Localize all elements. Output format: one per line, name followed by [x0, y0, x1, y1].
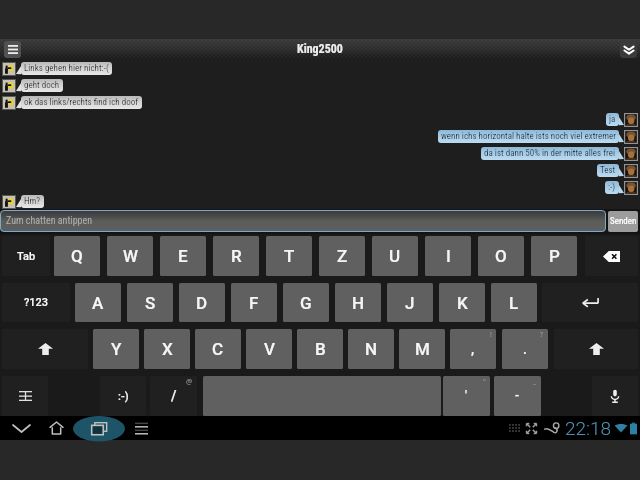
- staticText: R: [231, 246, 242, 266]
- button[interactable]: Recent apps: [73, 416, 125, 440]
- staticText: L: [509, 293, 519, 313]
- staticText: ?123: [24, 296, 49, 309]
- staticText: Test: [600, 165, 616, 176]
- button[interactable]: :-): [0, 180, 638, 195]
- staticText: ?: [540, 330, 544, 340]
- button[interactable]: L: [491, 283, 537, 322]
- button[interactable]: Shift: [554, 329, 638, 369]
- staticText: Q: [71, 246, 83, 266]
- button[interactable]: P: [531, 236, 577, 276]
- button[interactable]: .: [502, 329, 548, 369]
- staticText: C: [212, 339, 224, 359]
- staticText: -: [515, 389, 520, 403]
- staticText: A: [92, 293, 104, 313]
- button[interactable]: ?123: [2, 283, 70, 322]
- button[interactable]: H: [335, 283, 381, 322]
- staticText: Senden: [610, 216, 637, 227]
- staticText: ": [483, 377, 486, 387]
- button[interactable]: K: [439, 283, 485, 322]
- staticText: King2500: [297, 42, 343, 56]
- staticText: /: [171, 388, 177, 404]
- staticText: geht doch: [24, 80, 60, 91]
- staticText: wenn ichs horizontal halte ists noch vie…: [441, 131, 616, 142]
- button[interactable]: Q: [54, 236, 100, 276]
- button[interactable]: G: [283, 283, 329, 322]
- staticText: T: [284, 246, 295, 266]
- staticText: M: [415, 339, 430, 359]
- button[interactable]: Shift: [2, 329, 88, 369]
- button[interactable]: C: [195, 329, 241, 369]
- staticText: ': [465, 389, 468, 403]
- button[interactable]: Zum chatten antippen: [0, 210, 606, 232]
- staticText: X: [162, 339, 173, 359]
- button[interactable]: da ist dann 50% in der mitte alles frei: [0, 146, 638, 161]
- button[interactable]: ok das links/rechts find ich doof: [2, 95, 142, 110]
- button[interactable]: geht doch: [2, 78, 63, 93]
- button[interactable]: D: [179, 283, 225, 322]
- button[interactable]: S: [127, 283, 173, 322]
- staticText: da ist dann 50% in der mitte alles frei: [484, 148, 616, 159]
- staticText: :-): [608, 182, 616, 193]
- button[interactable]: R: [213, 236, 259, 276]
- button[interactable]: M: [399, 329, 445, 369]
- staticText: !: [490, 330, 492, 340]
- button[interactable]: Test: [0, 163, 638, 178]
- button[interactable]: ja: [0, 112, 638, 127]
- button[interactable]: /: [150, 376, 197, 416]
- button[interactable]: V: [246, 329, 292, 369]
- staticText: K: [457, 293, 468, 313]
- button[interactable]: Delete: [585, 236, 638, 276]
- button[interactable]: W: [107, 236, 153, 276]
- button[interactable]: A: [75, 283, 121, 322]
- button[interactable]: Menu: [126, 416, 156, 440]
- button[interactable]: wenn ichs horizontal halte ists noch vie…: [0, 129, 638, 144]
- button[interactable]: Y: [93, 329, 139, 369]
- staticText: F: [249, 293, 259, 313]
- button[interactable]: Back: [2, 416, 40, 440]
- button[interactable]: Senden: [608, 211, 638, 232]
- button[interactable]: T: [266, 236, 312, 276]
- staticText: _: [533, 377, 537, 387]
- button[interactable]: Home: [40, 416, 72, 440]
- staticText: W: [123, 246, 138, 266]
- staticText: @: [186, 377, 193, 387]
- staticText: O: [495, 246, 507, 266]
- button[interactable]: X: [144, 329, 190, 369]
- staticText: 22:18: [565, 417, 612, 439]
- button[interactable]: ': [443, 376, 490, 416]
- button[interactable]: Emoticons: [100, 376, 146, 416]
- button[interactable]: Links gehen hier nicht:-(: [2, 61, 112, 76]
- staticText: B: [315, 339, 326, 359]
- staticText: U: [389, 246, 401, 266]
- button[interactable]: Hm?: [2, 194, 44, 209]
- button[interactable]: Tab: [2, 236, 50, 276]
- staticText: ,: [471, 341, 475, 357]
- button[interactable]: F: [231, 283, 277, 322]
- button[interactable]: Enter: [542, 283, 638, 322]
- staticText: V: [264, 339, 275, 359]
- button[interactable]: I: [425, 236, 471, 276]
- staticText: Tab: [17, 250, 36, 263]
- button[interactable]: Menu: [4, 41, 21, 58]
- button[interactable]: E: [160, 236, 206, 276]
- staticText: Hm?: [24, 196, 41, 207]
- staticText: Y: [111, 339, 122, 359]
- button[interactable]: Voice input: [592, 376, 638, 416]
- button[interactable]: B: [297, 329, 343, 369]
- button[interactable]: Switch keyboard: [2, 376, 48, 416]
- button[interactable]: Scroll to latest message: [620, 41, 637, 58]
- button[interactable]: J: [387, 283, 433, 322]
- button[interactable]: ,: [450, 329, 496, 369]
- button[interactable]: -: [494, 376, 541, 416]
- staticText: Links gehen hier nicht:-(: [24, 63, 109, 74]
- button[interactable]: O: [478, 236, 524, 276]
- staticText: S: [145, 293, 156, 313]
- staticText: G: [300, 293, 312, 313]
- staticText: Z: [337, 246, 348, 266]
- button[interactable]: N: [348, 329, 394, 369]
- button[interactable]: Z: [319, 236, 365, 276]
- button[interactable]: U: [372, 236, 418, 276]
- staticText: I: [446, 246, 451, 266]
- staticText: :-): [118, 390, 129, 403]
